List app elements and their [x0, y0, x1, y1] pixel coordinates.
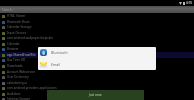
staticText: Bus Time HD [7, 58, 26, 62]
button[interactable]: Email [38, 58, 156, 70]
button[interactable]: Just once [47, 90, 144, 100]
button[interactable]: Account Webservice [0, 69, 194, 75]
staticText: Just once [89, 93, 102, 97]
staticText: HTML Viewer [7, 14, 26, 18]
button[interactable]: com.android.wallpaper.livepicker [0, 35, 194, 41]
staticText: Email [51, 62, 61, 67]
button[interactable]: app.SharedEmailFile [0, 52, 194, 58]
staticText: Calendar [7, 42, 20, 46]
other: Bluetooth [40, 49, 47, 56]
staticText: Search... [2, 8, 14, 12]
other: Email [40, 61, 47, 68]
staticText: com.android.wallpaper.livepicker [7, 36, 54, 40]
button[interactable]: HTML Viewer [0, 13, 194, 19]
button[interactable]: Calendar [0, 41, 194, 47]
staticText: Audiobox [7, 92, 21, 96]
staticText: Downloads [7, 64, 23, 68]
button[interactable]: calendaring.ui [0, 80, 194, 86]
button[interactable]: Audiobox [0, 91, 194, 97]
staticText: Browser [7, 47, 19, 51]
button[interactable]: Browser [0, 46, 194, 52]
button[interactable]: Calendar Storage [0, 24, 194, 30]
staticText: 4:15 [186, 1, 192, 5]
staticText: Account Webservice [7, 70, 36, 74]
staticText: Input Devices [7, 31, 27, 35]
button[interactable]: Bluetooth [38, 47, 156, 58]
button[interactable]: Downloads [0, 63, 194, 69]
staticText: Bluetooth Share [7, 20, 30, 24]
button[interactable]: com.android.providers.applications [0, 85, 194, 91]
staticText: com.android.providers.applications [7, 86, 57, 90]
staticText: User Dictionary [7, 75, 29, 79]
button[interactable]: Settings Storage [0, 96, 194, 100]
button[interactable]: Input Devices [0, 30, 194, 36]
staticText: Bluetooth [51, 50, 68, 55]
staticText: Settings Storage [7, 97, 31, 100]
staticText: calendaring.ui [7, 81, 28, 85]
button[interactable]: Bluetooth Share [0, 19, 194, 25]
button[interactable]: User Dictionary [0, 74, 194, 80]
staticText: app.SharedEmailFile [7, 53, 36, 57]
staticText: Calendar Storage [7, 25, 32, 29]
button[interactable]: Bus Time HD [0, 57, 194, 63]
